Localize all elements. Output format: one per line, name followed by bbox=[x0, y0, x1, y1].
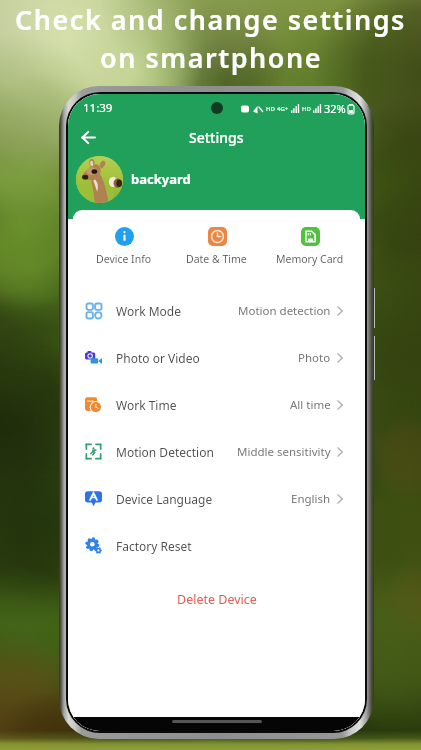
staticText: backyard bbox=[131, 170, 191, 188]
button[interactable]: Device Info bbox=[77, 223, 170, 269]
staticText: Photo bbox=[298, 350, 331, 366]
staticText: 4G+ bbox=[277, 105, 289, 113]
button[interactable]: Factory Reset bbox=[73, 522, 360, 569]
button[interactable]: Delete Device bbox=[163, 586, 271, 613]
staticText: Check and change settings bbox=[15, 1, 406, 38]
staticText: 11:39 bbox=[83, 100, 113, 116]
staticText: Delete Device bbox=[177, 591, 257, 608]
button[interactable]: Work Time bbox=[73, 381, 360, 428]
staticText: on smartphone bbox=[100, 39, 322, 76]
staticText: Middle sensitivity bbox=[237, 444, 331, 460]
button[interactable]: Photo or Video bbox=[73, 334, 360, 381]
staticText: All time bbox=[290, 397, 331, 413]
button[interactable]: Back bbox=[73, 122, 103, 152]
staticText: Work Time bbox=[116, 397, 177, 413]
staticText: Photo or Video bbox=[116, 350, 200, 366]
staticText: Date & Time bbox=[186, 252, 247, 266]
staticText: Device Info bbox=[96, 252, 152, 266]
staticText: HD bbox=[266, 105, 275, 113]
staticText: Memory Card bbox=[276, 252, 344, 266]
staticText: Settings bbox=[189, 128, 244, 147]
button[interactable]: Date & Time bbox=[170, 223, 263, 269]
button[interactable]: Work Mode bbox=[73, 287, 360, 334]
staticText: Motion detection bbox=[238, 303, 331, 319]
staticText: Motion Detection bbox=[116, 444, 214, 460]
button[interactable]: Motion Detection bbox=[73, 428, 360, 475]
staticText: HD bbox=[302, 105, 311, 113]
staticText: Factory Reset bbox=[116, 538, 192, 554]
button[interactable]: Device Language bbox=[73, 475, 360, 522]
staticText: English bbox=[291, 491, 331, 507]
button[interactable]: Memory Card bbox=[263, 223, 356, 269]
staticText: Work Mode bbox=[116, 303, 181, 319]
staticText: 32% bbox=[324, 101, 346, 116]
staticText: Device Language bbox=[116, 491, 213, 507]
